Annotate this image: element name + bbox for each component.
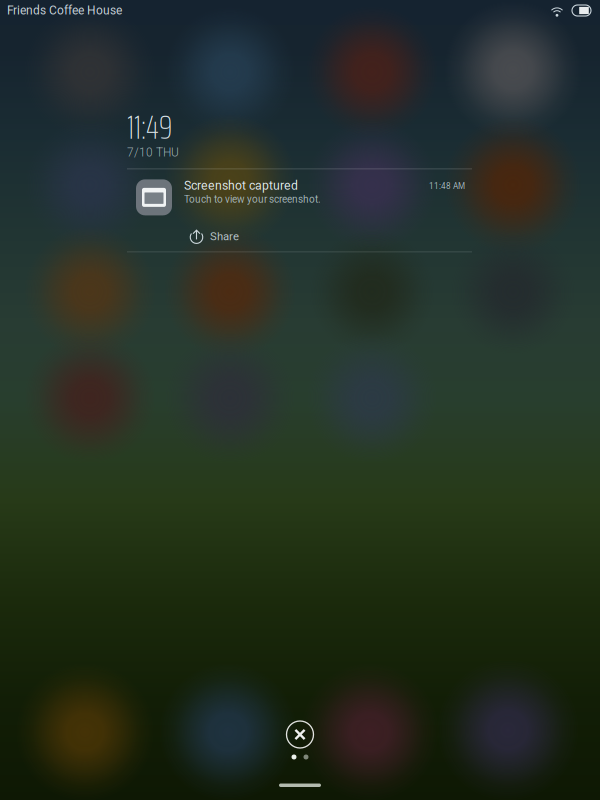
button[interactable]: Clear all notifications (283, 717, 317, 751)
button[interactable]: Screenshot captured (127, 169, 472, 221)
staticText: 11:49 (127, 101, 172, 153)
staticText: Friends Coffee House (7, 3, 122, 18)
staticText: Share (210, 230, 239, 243)
staticText: 7/10 THU (127, 145, 179, 159)
staticText: Screenshot captured (184, 178, 298, 193)
button[interactable]: Share (127, 221, 472, 251)
staticText: Touch to view your screenshot. (184, 193, 321, 205)
staticText: 11:48 AM (429, 181, 465, 191)
